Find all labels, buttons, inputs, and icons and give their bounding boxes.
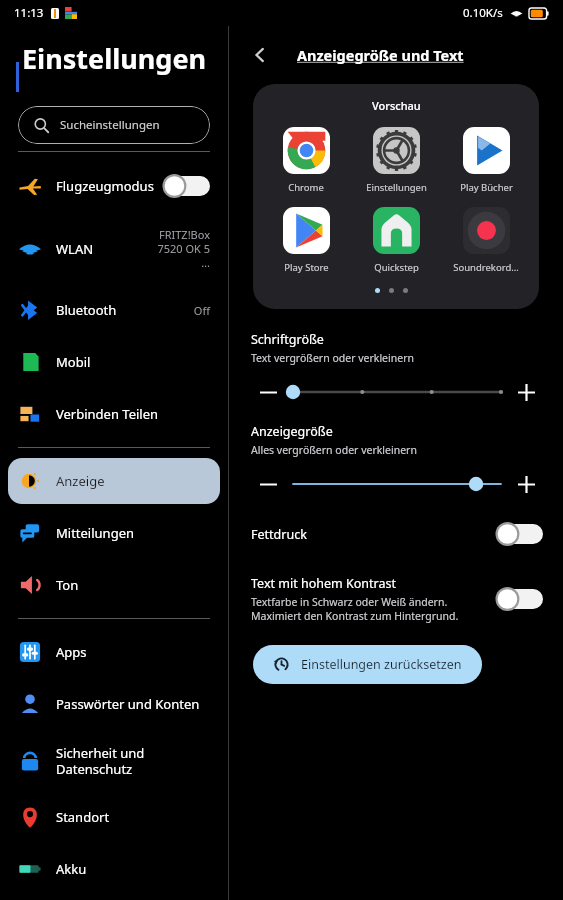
staticText: Vorschau [372,98,421,113]
button[interactable]: WLAN [8,216,220,281]
staticText: Anzeigegröße [251,423,333,440]
staticText: Ton [56,576,210,594]
staticText: Akku [56,860,210,878]
staticText: Play Bücher [460,181,513,194]
button[interactable]: Verkleinern [251,375,285,409]
staticText: Standort [56,808,210,826]
staticText: Bluetooth [56,301,193,319]
button[interactable] [285,377,509,407]
button[interactable]: Einstellungen zurücksetzen [253,645,482,684]
staticText: Passwörter und Konten [56,695,210,713]
button[interactable]: Bluetooth [8,287,220,333]
button[interactable]: Flugzeugmodus umschalten [162,173,210,199]
staticText: Einstellungen [366,181,427,194]
button[interactable]: Vergrößern [509,467,543,501]
staticText: Text vergrößern oder verkleinern [251,351,414,365]
button[interactable]: Fettdruck [229,501,563,553]
button[interactable]: Einstellungen [359,127,433,194]
staticText: Off [193,303,210,318]
staticText: Einstellungen [22,40,207,77]
button[interactable]: Play Store [269,207,343,274]
button[interactable]: Chrome [269,127,343,194]
button[interactable]: Mobil [8,339,220,385]
button[interactable]: Anzeige [8,458,220,504]
button[interactable]: Akku [8,846,220,892]
staticText: Verbinden Teilen [56,405,210,423]
staticText: Chrome [288,181,324,194]
button[interactable]: Play Bücher [449,127,523,194]
staticText: Apps [56,643,210,661]
button[interactable]: Sucheinstellungen [18,106,210,144]
staticText: FRITZ!Box 7520 OK 5 … [146,227,210,270]
staticText: Sucheinstellungen [60,117,160,133]
staticText: Sicherheit und Datenschutz [56,744,210,777]
staticText: 0.10K/s [463,5,503,21]
button[interactable]: Verkleinern [251,467,285,501]
button[interactable]: Vergrößern [509,375,543,409]
button[interactable]: Sicherheit und Datenschutz [8,733,220,788]
button[interactable]: Quickstep [359,207,433,274]
staticText: Flugzeugmodus [56,177,162,195]
button[interactable]: Anzeigegröße und Text [297,45,464,65]
button[interactable]: Zurück [241,36,279,74]
button[interactable]: Text mit hohem Kontrast [229,553,563,623]
staticText: Mitteilungen [56,524,210,542]
staticText: Fettdruck [251,526,495,543]
button[interactable]: Standort [8,794,220,840]
staticText: Mobil [56,353,210,371]
button[interactable]: Fettdruck umschalten [495,521,543,547]
staticText: WLAN [56,240,146,258]
staticText: Play Store [284,261,329,274]
staticText: Schriftgröße [251,331,324,348]
button[interactable]: Soundrekord… [449,207,523,274]
button[interactable]: Passwörter und Konten [8,681,220,727]
staticText: Text mit hohem Kontrast [251,575,396,592]
button[interactable]: Verbinden Teilen [8,391,220,437]
staticText: Quickstep [374,261,419,274]
button[interactable]: Ton [8,562,220,608]
staticText: Textfarbe in Schwarz oder Weiß ändern. M… [251,595,483,623]
button[interactable]: Mitteilungen [8,510,220,556]
button[interactable]: Apps [8,629,220,675]
button[interactable]: Flugzeugmodus [8,162,220,210]
button[interactable]: Text mit hohem Kontrast umschalten [495,586,543,612]
staticText: 11:13 [14,5,44,21]
staticText: Anzeige [56,472,210,490]
staticText: Soundrekord… [453,261,519,274]
staticText: Alles vergrößern oder verkleinern [251,443,417,457]
button[interactable] [285,469,509,499]
staticText: Einstellungen zurücksetzen [301,656,462,673]
